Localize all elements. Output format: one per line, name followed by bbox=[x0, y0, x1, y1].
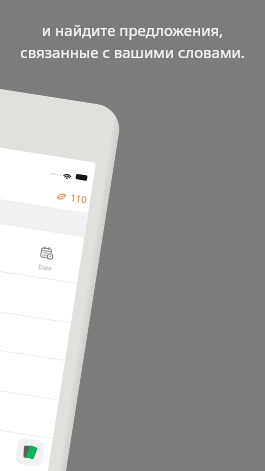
button[interactable]: Date bbox=[26, 239, 67, 277]
button[interactable] bbox=[0, 300, 71, 361]
button[interactable] bbox=[0, 260, 77, 322]
button[interactable] bbox=[0, 377, 59, 438]
button[interactable]: Cards bbox=[15, 437, 46, 468]
staticText: 110 bbox=[69, 191, 88, 206]
staticText: и найдите предложения, связанные с вашим… bbox=[20, 20, 245, 62]
staticText: Date bbox=[38, 263, 53, 273]
button[interactable] bbox=[0, 338, 65, 399]
